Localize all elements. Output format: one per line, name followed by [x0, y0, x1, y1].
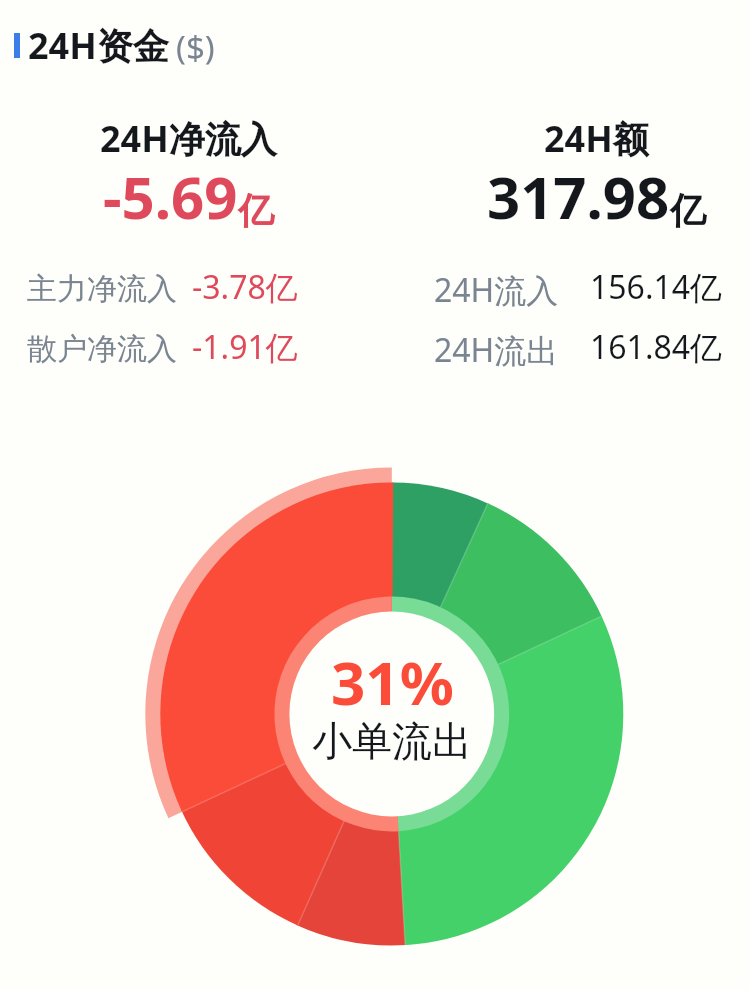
- button[interactable]: 24H资金: [0, 12, 750, 78]
- button[interactable]: 31%: [192, 641, 592, 773]
- staticText: 317.98: [487, 157, 670, 236]
- staticText: 24H流入: [434, 268, 559, 312]
- staticText: 24H额: [544, 114, 649, 163]
- staticText: 24H流出: [434, 328, 559, 372]
- staticText: 主力净流入: [27, 270, 177, 308]
- staticText: 161.84亿: [590, 325, 723, 369]
- button[interactable]: 散户净流入: [0, 330, 177, 368]
- button[interactable]: 主力净流入: [0, 270, 177, 308]
- button[interactable]: 24H流出: [159, 328, 559, 372]
- button[interactable]: 24H净流入: [0, 114, 388, 163]
- staticText: 24H净流入: [100, 114, 277, 163]
- button[interactable]: 24H流入: [159, 268, 559, 312]
- staticText: 散户净流入: [27, 330, 177, 368]
- staticText: -5.69: [103, 157, 238, 236]
- staticText: 31%: [331, 641, 454, 723]
- staticText: 亿: [238, 188, 274, 233]
- staticText: 156.14亿: [590, 265, 723, 309]
- staticText: -3.78亿: [192, 265, 298, 309]
- staticText: ($): [176, 25, 215, 70]
- staticText: 亿: [670, 188, 706, 233]
- staticText: 24H资金: [28, 21, 169, 70]
- staticText: -1.91亿: [192, 325, 298, 369]
- staticText: 小单流出: [312, 716, 472, 766]
- button[interactable]: 24H额: [396, 114, 750, 163]
